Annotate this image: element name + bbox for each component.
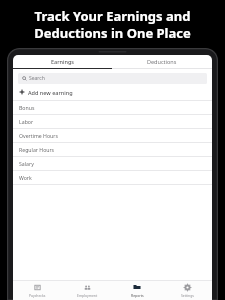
staticText: Overtime Hours	[19, 132, 58, 139]
staticText: Employment	[77, 293, 98, 298]
button[interactable]: Work	[13, 171, 212, 184]
button[interactable]: Employment	[62, 281, 112, 300]
button[interactable]: Overtime Hours	[13, 129, 212, 142]
button[interactable]: Add new earning	[13, 84, 212, 100]
button[interactable]: Labor	[13, 115, 212, 128]
staticText: Bonus	[19, 104, 35, 111]
button[interactable]: Earnings	[13, 55, 112, 68]
button[interactable]: Reports	[112, 281, 162, 300]
staticText: Work	[19, 174, 32, 181]
button[interactable]: Settings	[162, 281, 212, 300]
staticText: Paychecks	[29, 293, 46, 298]
staticText: Settings	[181, 293, 194, 298]
button[interactable]: Regular Hours	[13, 143, 212, 156]
staticText: Regular Hours	[19, 146, 55, 153]
staticText: Deductions	[147, 58, 177, 65]
button[interactable]: Deductions	[112, 55, 212, 68]
button[interactable]: Search	[18, 73, 207, 84]
button[interactable]: Bonus	[13, 101, 212, 114]
staticText: Track Your Earnings and Deductions in On…	[8, 7, 217, 42]
button[interactable]: Salary	[13, 157, 212, 170]
staticText: Salary	[19, 160, 34, 167]
staticText: Reports	[131, 293, 144, 298]
staticText: Add new earning	[28, 89, 73, 96]
staticText: Labor	[19, 118, 34, 125]
button[interactable]: Paychecks	[13, 281, 62, 300]
staticText: Earnings	[51, 58, 75, 65]
staticText: Search	[29, 75, 45, 82]
